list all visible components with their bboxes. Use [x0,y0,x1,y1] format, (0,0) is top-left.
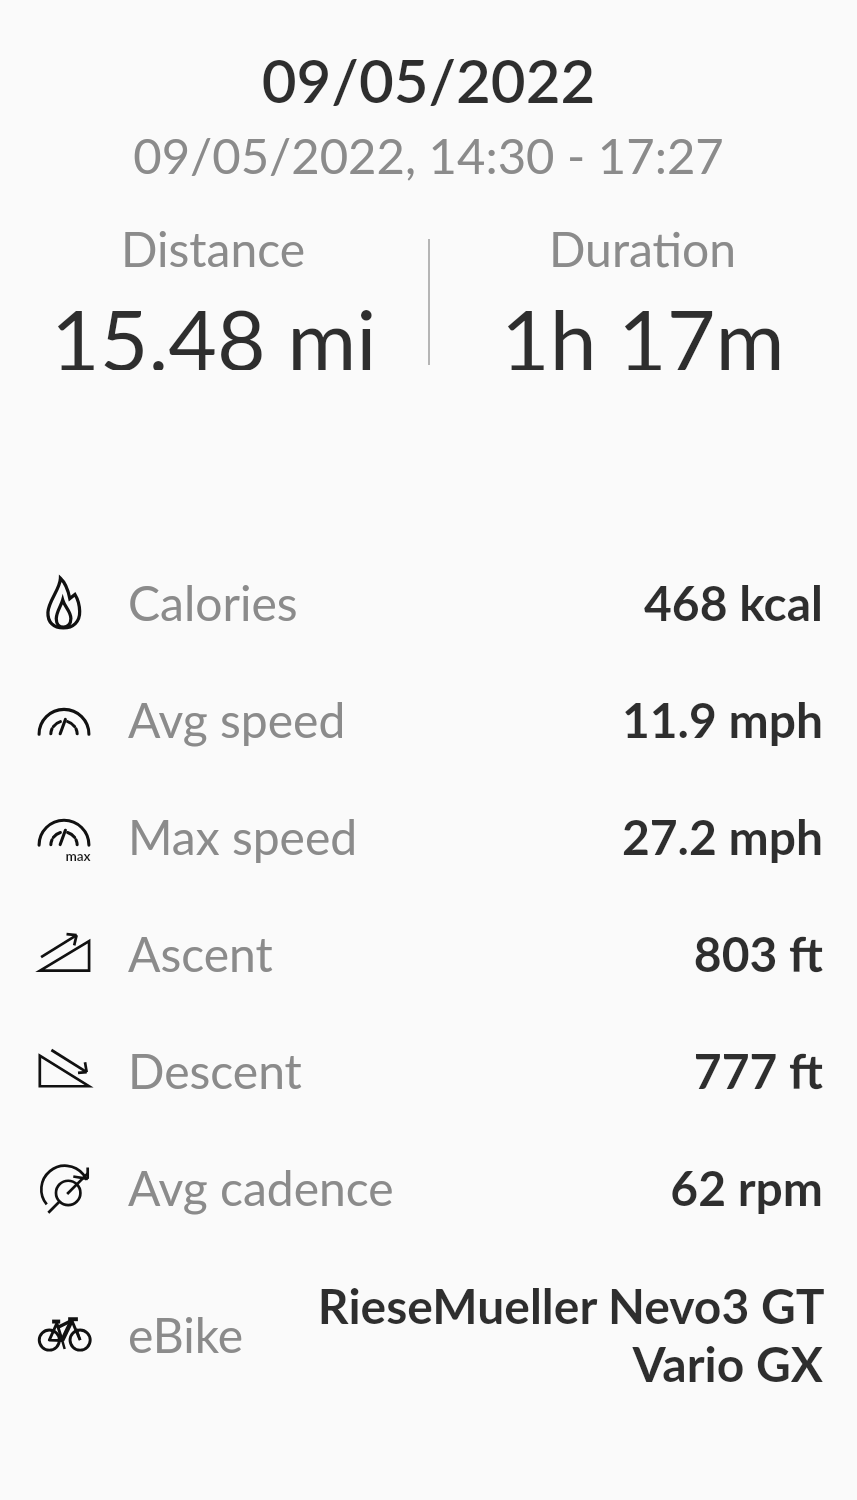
staticText: 27.2 mph [621,808,823,866]
button[interactable]: Max speed [0,778,857,895]
other: Avg cadence [36,1160,92,1216]
other: Calories [36,575,92,631]
staticText: 09/05/2022, 14:30 - 17:27 [0,126,857,185]
button[interactable]: Avg speed [0,661,857,778]
staticText: 1h 17m [501,288,785,370]
staticText: Avg cadence [128,1159,394,1217]
staticText: 15.48 mi [51,288,377,370]
other: Descent [36,1043,92,1099]
staticText: Duration [549,220,737,278]
staticText: 803 ft [693,925,823,983]
staticText: Avg speed [128,691,346,749]
staticText: 468 kcal [643,574,823,632]
button[interactable]: Ascent [0,895,857,1012]
staticText: Descent [128,1042,302,1100]
other: Ascent [36,926,92,982]
staticText: eBike [128,1306,244,1364]
staticText: Calories [128,574,298,632]
staticText: 62 rpm [670,1159,823,1217]
button[interactable]: Avg cadence [0,1129,857,1246]
staticText: Distance [121,220,306,278]
button[interactable]: Descent [0,1012,857,1129]
staticText: Ascent [128,925,273,983]
staticText: Max speed [128,808,358,866]
staticText: 09/05/2022 [0,44,857,116]
staticText: RieseMueller Nevo3 GT Vario GX [244,1277,823,1393]
button[interactable]: eBike [0,1246,857,1423]
button[interactable]: Calories [0,544,857,661]
staticText: 11.9 mph [621,691,823,749]
staticText: 777 ft [693,1042,823,1100]
other: Max speed [36,809,92,865]
other: eBike [36,1307,92,1363]
other: Avg speed [36,692,92,748]
